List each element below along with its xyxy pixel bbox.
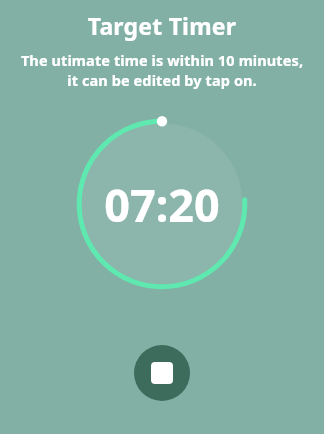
staticText: Target Timer: [0, 10, 324, 41]
button[interactable]: Stop timer: [134, 345, 190, 401]
staticText: 07:20: [104, 174, 220, 235]
button[interactable]: 07:20: [74, 116, 250, 292]
staticText: The utimate time is within 10 minutes, i…: [10, 50, 314, 91]
